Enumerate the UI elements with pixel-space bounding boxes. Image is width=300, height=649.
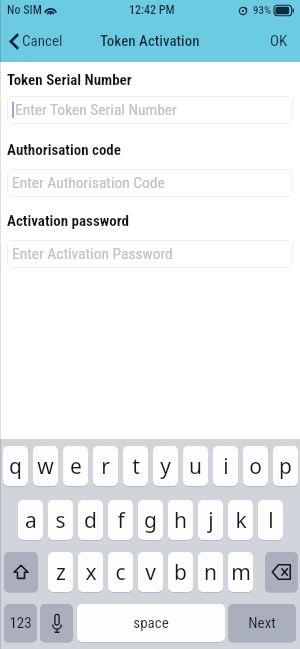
button[interactable]: Dictation: [40, 604, 73, 642]
staticText: h: [174, 506, 187, 535]
staticText: z: [56, 558, 66, 587]
button[interactable]: m: [228, 552, 253, 592]
button[interactable]: s: [48, 500, 73, 540]
staticText: Token Activation: [100, 32, 200, 50]
staticText: u: [189, 452, 202, 481]
staticText: Enter Authorisation Code: [12, 174, 165, 192]
staticText: g: [144, 506, 157, 535]
button[interactable]: n: [198, 552, 223, 592]
staticText: OK: [270, 32, 288, 50]
staticText: Enter Activation Password: [12, 245, 173, 263]
staticText: c: [115, 558, 126, 587]
staticText: y: [160, 452, 171, 481]
button[interactable]: Enter Activation Password: [7, 240, 293, 268]
staticText: p: [279, 452, 292, 481]
staticText: Token Serial Number: [7, 71, 132, 89]
staticText: f: [117, 506, 125, 535]
button[interactable]: z: [48, 552, 73, 592]
button[interactable]: c: [108, 552, 133, 592]
button[interactable]: j: [198, 500, 223, 540]
button[interactable]: w: [33, 446, 58, 486]
button[interactable]: q: [3, 446, 28, 486]
staticText: l: [268, 506, 274, 535]
button[interactable]: OK: [256, 24, 300, 58]
button[interactable]: h: [168, 500, 193, 540]
staticText: x: [85, 558, 97, 587]
staticText: i: [223, 452, 229, 481]
staticText: e: [70, 452, 82, 481]
button[interactable]: l: [258, 500, 283, 540]
staticText: w: [37, 452, 54, 481]
button[interactable]: a: [18, 500, 43, 540]
button[interactable]: v: [138, 552, 163, 592]
button[interactable]: x: [78, 552, 103, 592]
staticText: Authorisation code: [7, 141, 121, 159]
staticText: 93%: [253, 4, 271, 17]
button[interactable]: d: [78, 500, 103, 540]
staticText: Activation password: [7, 212, 129, 230]
button[interactable]: space: [77, 604, 225, 642]
button[interactable]: g: [138, 500, 163, 540]
button[interactable]: o: [243, 446, 268, 486]
button[interactable]: u: [183, 446, 208, 486]
staticText: Enter Token Serial Number: [15, 101, 177, 119]
button[interactable]: r: [93, 446, 118, 486]
button[interactable]: p: [273, 446, 298, 486]
button[interactable]: 123: [4, 604, 37, 642]
button[interactable]: Enter Token Serial Number: [7, 96, 293, 124]
button[interactable]: i: [213, 446, 238, 486]
button[interactable]: Enter Authorisation Code: [7, 169, 293, 197]
button[interactable]: Next: [228, 604, 296, 642]
button[interactable]: Cancel: [0, 26, 71, 56]
button[interactable]: k: [228, 500, 253, 540]
staticText: Cancel: [22, 32, 63, 50]
staticText: No SIM: [7, 3, 42, 17]
button[interactable]: Backspace: [265, 552, 298, 592]
button[interactable]: b: [168, 552, 193, 592]
staticText: a: [25, 506, 37, 535]
staticText: m: [231, 558, 251, 587]
staticText: t: [132, 452, 140, 481]
staticText: 123: [9, 614, 32, 632]
button[interactable]: e: [63, 446, 88, 486]
staticText: o: [249, 452, 262, 481]
staticText: k: [235, 506, 247, 535]
button[interactable]: f: [108, 500, 133, 540]
staticText: v: [145, 558, 156, 587]
staticText: 12:42 PM: [129, 3, 175, 17]
staticText: Next: [248, 614, 276, 632]
staticText: r: [101, 452, 110, 481]
staticText: q: [9, 452, 22, 481]
staticText: j: [208, 506, 214, 535]
button[interactable]: Shift: [4, 552, 38, 592]
staticText: space: [133, 614, 169, 632]
button[interactable]: y: [153, 446, 178, 486]
staticText: d: [84, 506, 97, 535]
staticText: n: [204, 558, 217, 587]
staticText: s: [55, 506, 66, 535]
staticText: b: [174, 558, 187, 587]
button[interactable]: t: [123, 446, 148, 486]
